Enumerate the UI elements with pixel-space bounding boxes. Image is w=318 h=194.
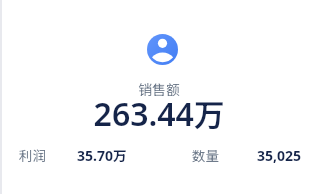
staticText: 35.70万 [77, 145, 127, 165]
button[interactable]: 数量 [159, 143, 318, 167]
staticText: 数量 [192, 145, 219, 165]
staticText: 利润 [19, 145, 46, 165]
staticText: 35,025 [257, 146, 302, 165]
button[interactable]: 利润 [0, 143, 159, 167]
staticText: 263.44万 [0, 91, 318, 136]
staticText: 销售额 [0, 79, 318, 99]
button[interactable]: Profile [147, 34, 178, 65]
